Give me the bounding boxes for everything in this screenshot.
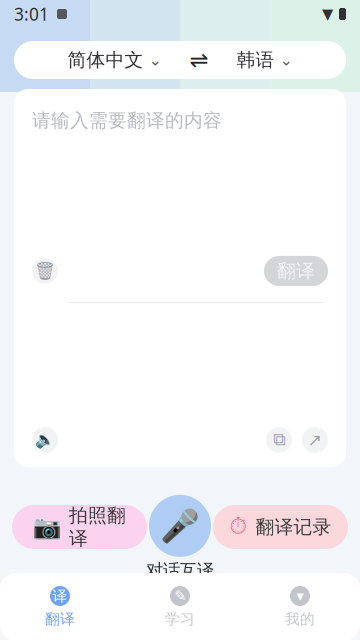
button[interactable]: 翻译 bbox=[264, 256, 328, 286]
staticText: 译 bbox=[52, 587, 67, 605]
button[interactable]: Conversation translate bbox=[149, 495, 211, 557]
button[interactable]: Swap languages bbox=[185, 43, 212, 77]
staticText: 韩语 bbox=[236, 48, 274, 71]
button[interactable]: 简体中文 bbox=[63, 42, 165, 77]
staticText: ↗ bbox=[307, 430, 322, 450]
staticText: ▾ bbox=[296, 588, 303, 604]
staticText: 翻译 bbox=[277, 259, 315, 282]
staticText: ⧉ bbox=[273, 431, 285, 448]
button[interactable]: Copy bbox=[266, 427, 292, 453]
button[interactable]: Share bbox=[302, 427, 328, 453]
staticText: 翻译记录 bbox=[255, 515, 331, 538]
button[interactable]: 韩语 bbox=[232, 42, 296, 77]
staticText: 拍照翻译 bbox=[69, 504, 126, 550]
staticText: 📷 bbox=[33, 514, 61, 540]
button[interactable]: Play audio bbox=[32, 427, 58, 453]
staticText: 🔈 bbox=[35, 431, 55, 449]
button[interactable]: ▾ bbox=[240, 576, 360, 638]
staticText: ⌄ bbox=[148, 51, 161, 69]
staticText: 🗑 bbox=[34, 261, 56, 281]
staticText: ⇌ bbox=[189, 47, 208, 73]
staticText: 我的 bbox=[285, 610, 315, 628]
button[interactable]: 📷 bbox=[12, 505, 147, 549]
staticText: 🎤 bbox=[160, 508, 200, 544]
button[interactable]: ✎ bbox=[120, 576, 240, 638]
staticText: ✎ bbox=[174, 588, 186, 604]
button[interactable]: 译 bbox=[0, 576, 120, 638]
staticText: 翻译 bbox=[45, 610, 75, 628]
staticText: 简体中文 bbox=[67, 48, 143, 71]
button[interactable]: Clear text bbox=[32, 258, 58, 284]
staticText: ▼ bbox=[322, 6, 333, 22]
staticText: ⏱ bbox=[229, 516, 247, 538]
staticText: 3:01 bbox=[14, 2, 49, 25]
button[interactable]: ⏱ bbox=[213, 505, 348, 549]
staticText: ⌄ bbox=[279, 51, 292, 69]
staticText: 对话互译 bbox=[146, 560, 214, 581]
staticText: 学习 bbox=[165, 610, 195, 628]
staticText: 请输入需要翻译的内容 bbox=[32, 109, 222, 132]
